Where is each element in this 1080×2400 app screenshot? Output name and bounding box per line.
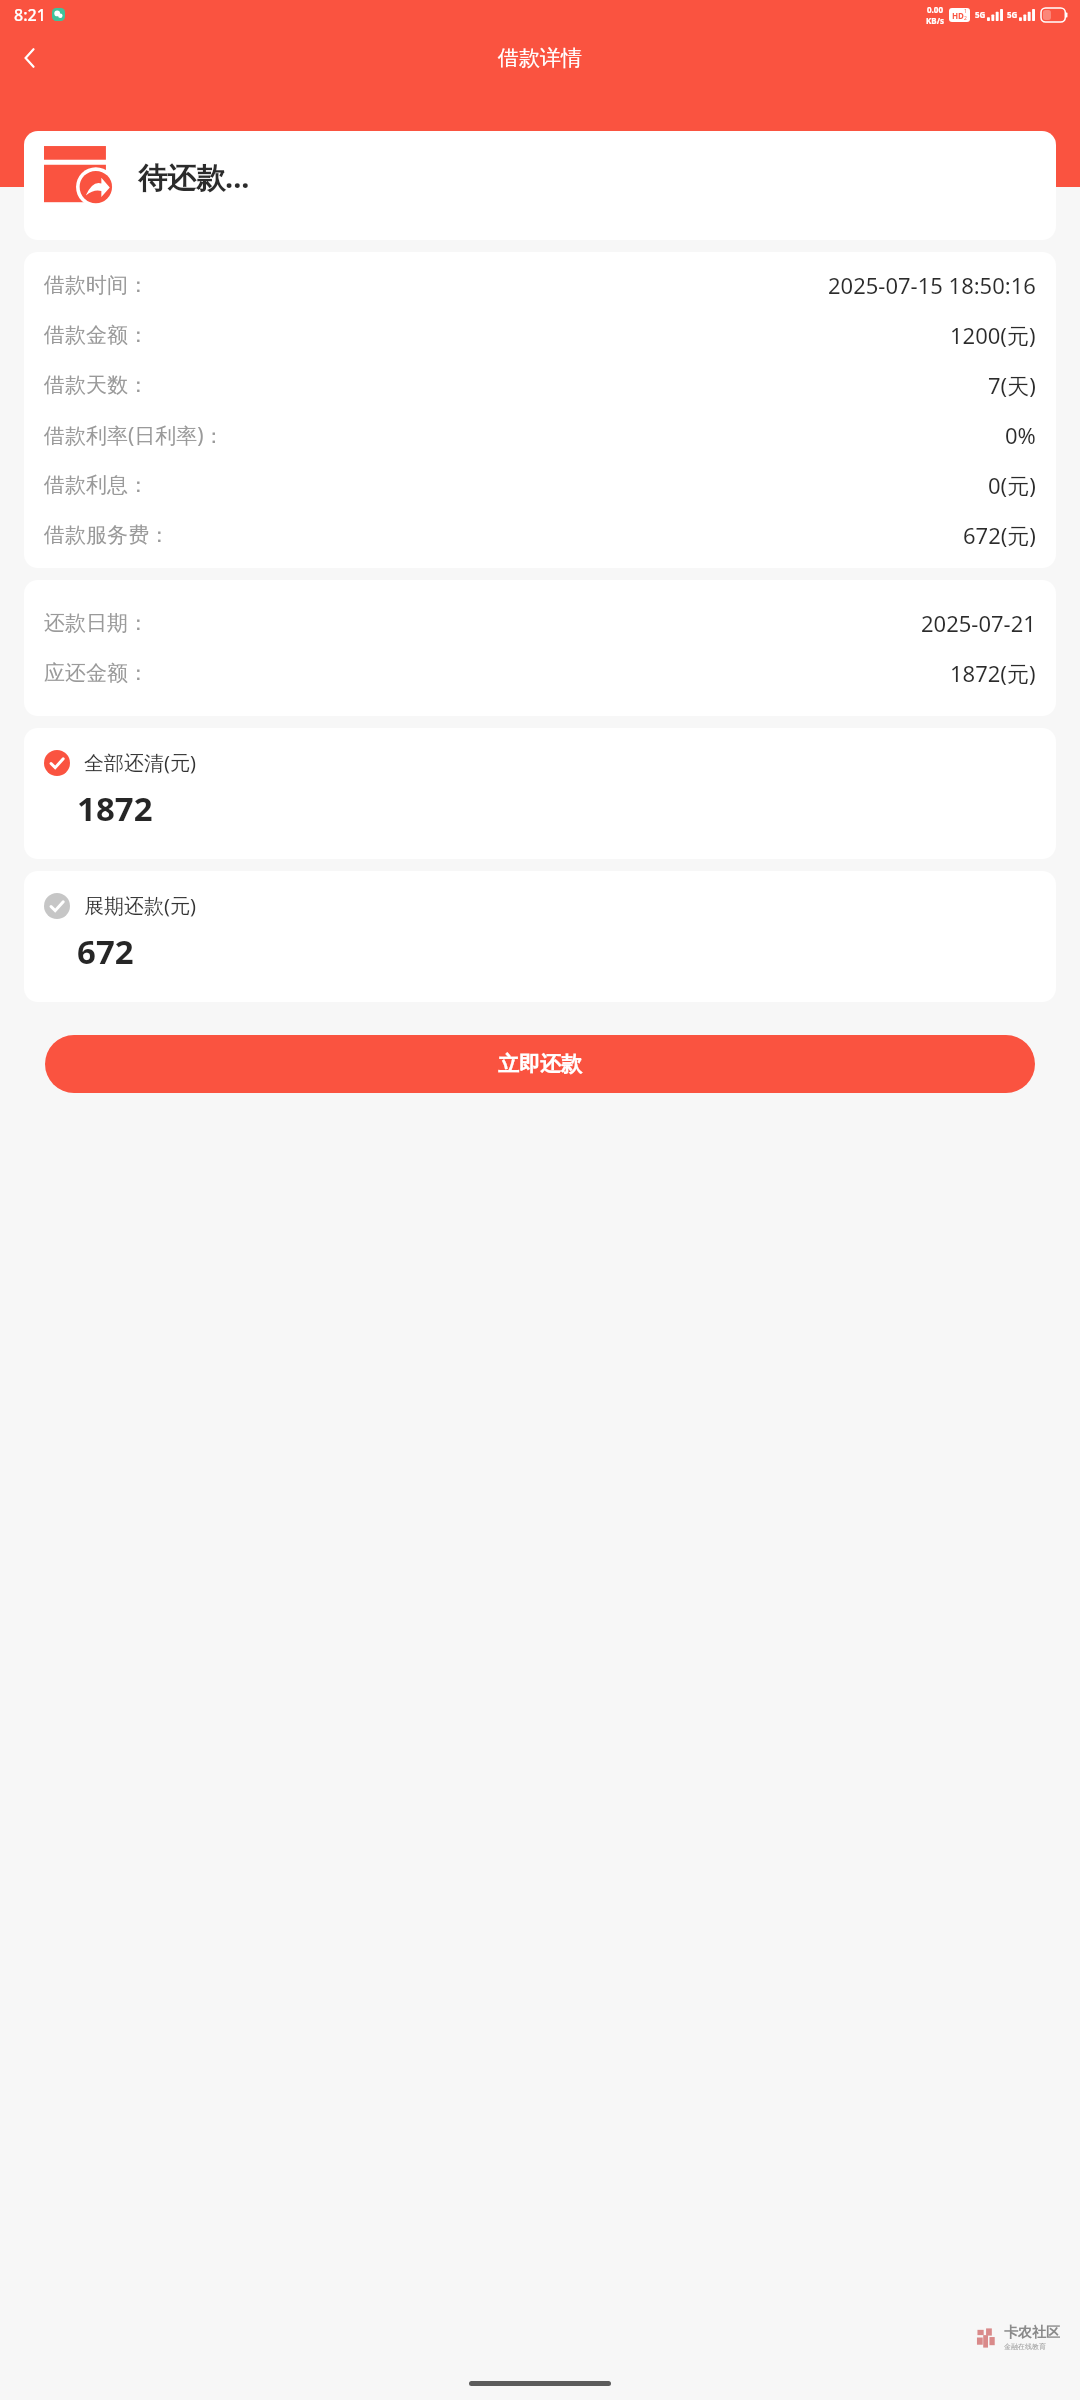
- button[interactable]: 立即还款: [45, 1035, 1035, 1093]
- staticText: 0%: [1005, 420, 1036, 450]
- staticText: HD: [952, 10, 964, 21]
- staticText: 应还金额：: [44, 660, 149, 686]
- staticText: 待还款...: [138, 157, 250, 197]
- staticText: 8:21: [14, 4, 46, 26]
- staticText: 2: [964, 15, 967, 22]
- staticText: 展期还款(元): [84, 892, 196, 919]
- staticText: 借款利息：: [44, 472, 149, 498]
- staticText: KB/s: [926, 15, 944, 26]
- staticText: 2025-07-21: [921, 608, 1036, 638]
- button[interactable]: 展期还款(元): [24, 871, 1056, 1002]
- staticText: 借款详情: [498, 45, 582, 71]
- staticText: 672: [77, 929, 134, 974]
- staticText: 借款服务费：: [44, 522, 170, 548]
- staticText: 借款时间：: [44, 272, 149, 298]
- staticText: 672(元): [963, 520, 1036, 550]
- staticText: 0(元): [988, 470, 1036, 500]
- staticText: 1200(元): [950, 320, 1036, 350]
- staticText: 0.00: [927, 4, 943, 15]
- button[interactable]: 待还款...: [24, 131, 1056, 240]
- staticText: 借款金额：: [44, 322, 149, 348]
- staticText: 5G: [975, 9, 986, 20]
- staticText: 1872(元): [950, 658, 1036, 688]
- staticText: 金融在线教育: [1004, 2342, 1046, 2351]
- staticText: 5G: [1007, 9, 1018, 20]
- staticText: 借款天数：: [44, 372, 149, 398]
- staticText: 全部还清(元): [84, 749, 196, 776]
- staticText: 1: [964, 8, 967, 15]
- button[interactable]: Back: [6, 34, 54, 82]
- staticText: 立即还款: [498, 1051, 582, 1077]
- staticText: 1872: [77, 786, 153, 831]
- staticText: 借款利率(日利率)：: [44, 421, 225, 450]
- button[interactable]: 全部还清(元): [24, 728, 1056, 859]
- staticText: 2025-07-15 18:50:16: [828, 270, 1036, 300]
- staticText: 7(天): [988, 370, 1036, 400]
- staticText: 还款日期：: [44, 610, 149, 636]
- staticText: 卡农社区: [1004, 2324, 1060, 2342]
